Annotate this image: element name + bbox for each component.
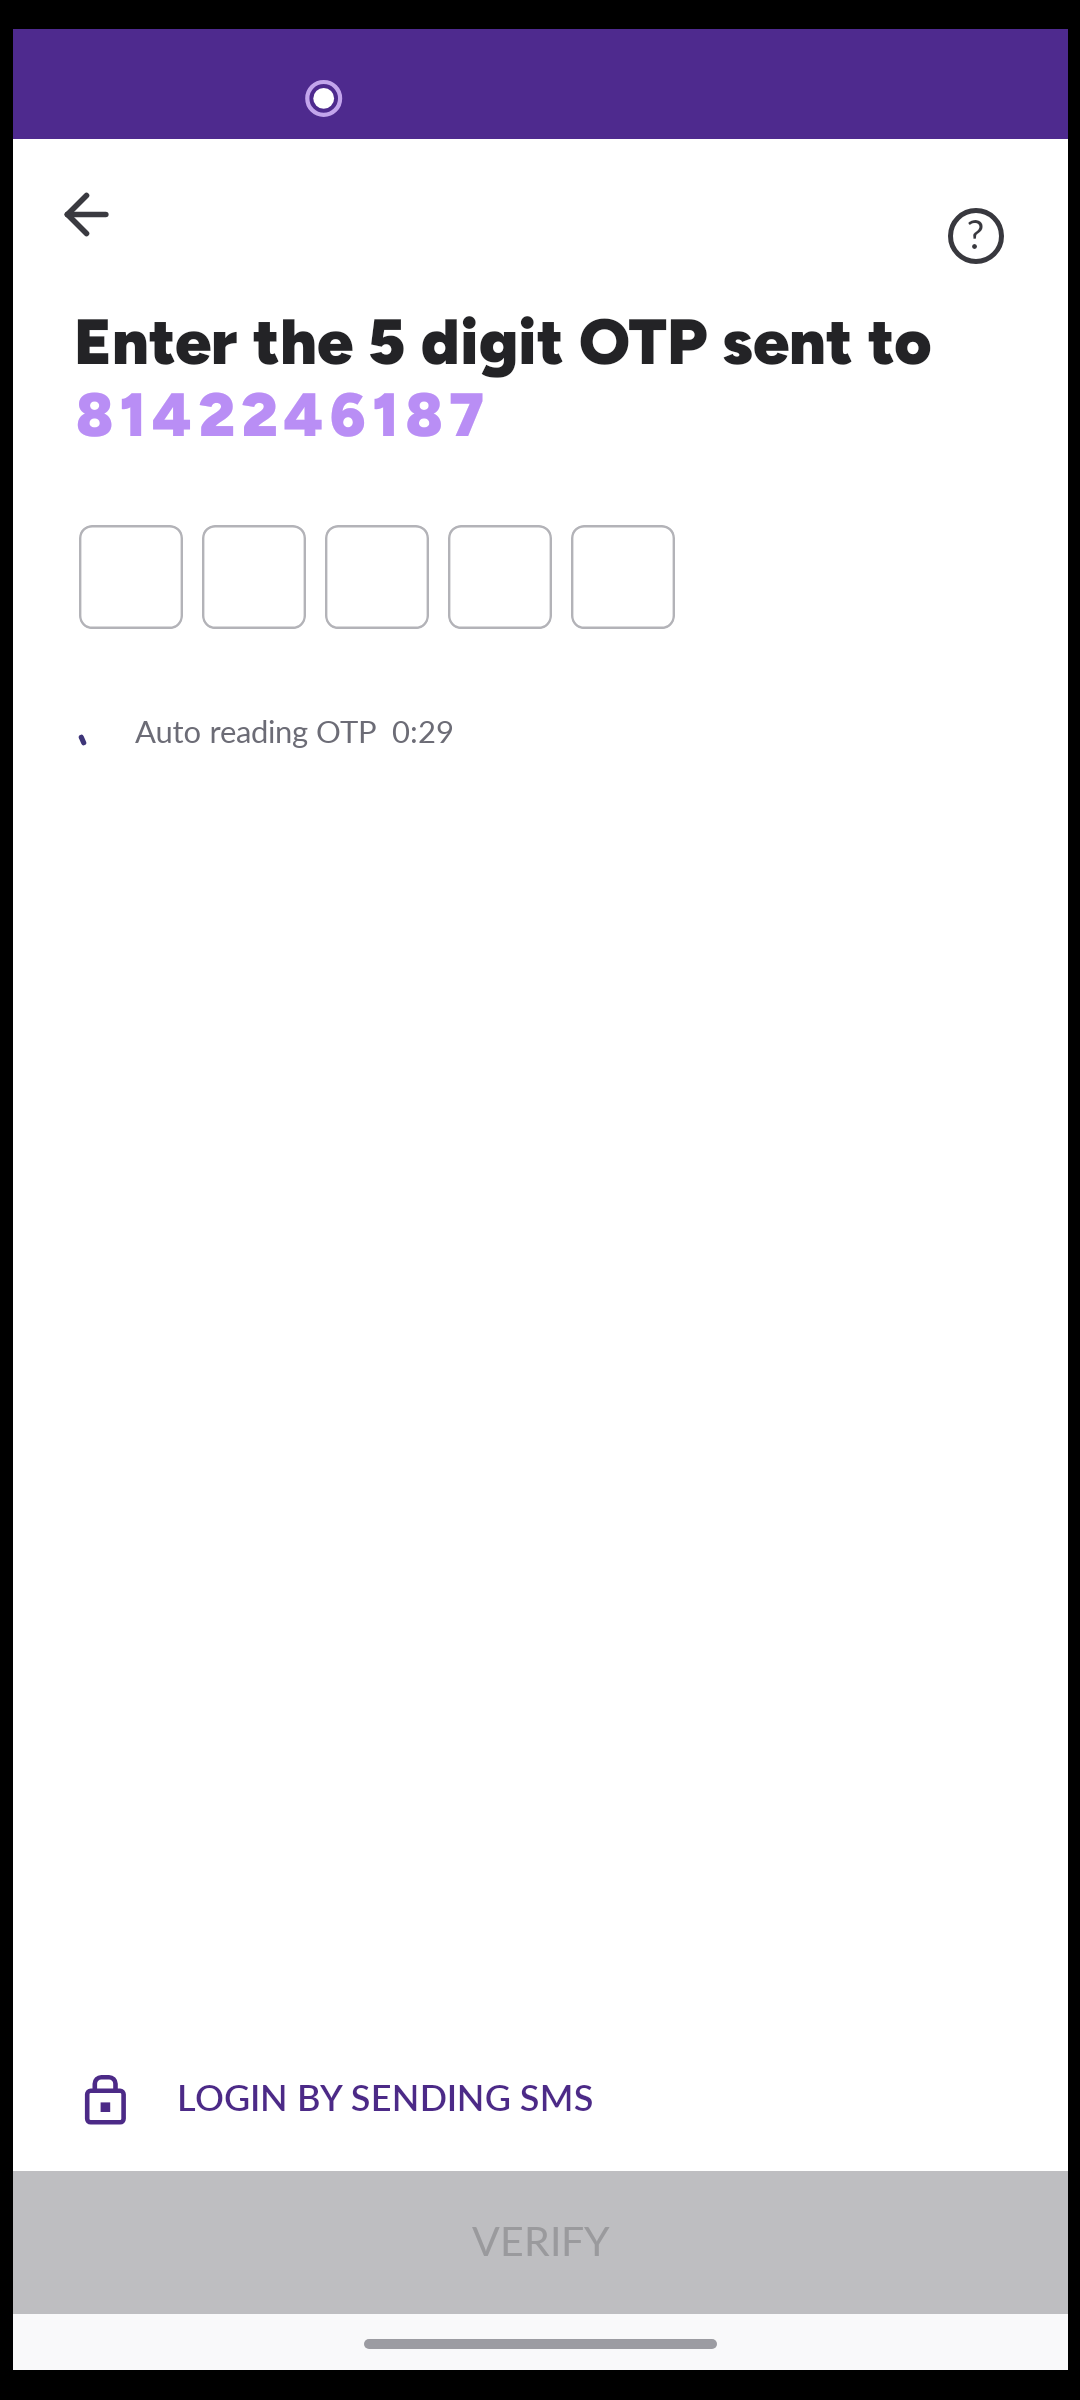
button[interactable]: OTP digit 1	[79, 525, 183, 629]
other: 8142246187	[76, 376, 526, 456]
other: Auto reading OTP 0:29	[135, 719, 515, 767]
button[interactable]: OTP digit 4	[448, 525, 552, 629]
button[interactable]: Back	[35, 172, 123, 256]
button[interactable]: LOGIN BY SENDING SMS	[63, 2061, 663, 2173]
button[interactable]: OTP digit 5	[571, 525, 675, 629]
button[interactable]: OTP digit 2	[202, 525, 306, 629]
button[interactable]: VERIFY	[13, 2171, 1068, 2315]
button[interactable]: OTP digit 3	[325, 525, 429, 629]
button[interactable]: Help	[940, 200, 1012, 272]
other: Enter the 5 digit OTP sent to	[74, 301, 974, 381]
